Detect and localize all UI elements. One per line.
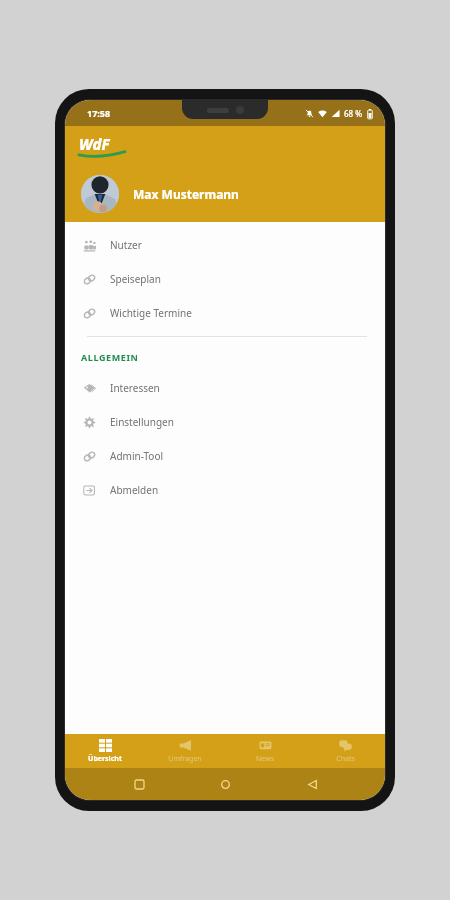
- button[interactable]: Interessen: [65, 371, 385, 405]
- staticText: Speiseplan: [110, 272, 161, 286]
- staticText: 17:58: [87, 107, 111, 119]
- button[interactable]: Übersicht: [65, 734, 145, 768]
- button[interactable]: Wichtige Termine: [65, 296, 385, 330]
- button[interactable]: Chats: [305, 734, 385, 768]
- staticText: WdF: [79, 134, 110, 154]
- staticText: News: [256, 754, 274, 764]
- button[interactable]: Recent apps: [126, 771, 152, 797]
- staticText: Einstellungen: [110, 415, 174, 429]
- button[interactable]: Abmelden: [65, 473, 385, 507]
- staticText: Nutzer: [110, 238, 142, 252]
- button[interactable]: Nutzer: [65, 228, 385, 262]
- button[interactable]: Max Mustermann: [65, 166, 385, 222]
- staticText: Chats: [336, 754, 355, 764]
- button[interactable]: Home: [212, 771, 238, 797]
- staticText: Abmelden: [110, 483, 159, 497]
- button[interactable]: Admin-Tool: [65, 439, 385, 473]
- button[interactable]: Umfragen: [145, 734, 225, 768]
- staticText: Max Mustermann: [133, 186, 239, 202]
- button[interactable]: Einstellungen: [65, 405, 385, 439]
- button[interactable]: Back: [299, 771, 325, 797]
- button[interactable]: News: [225, 734, 305, 768]
- staticText: Admin-Tool: [110, 449, 164, 463]
- staticText: Umfragen: [168, 754, 202, 764]
- staticText: Wichtige Termine: [110, 306, 192, 320]
- staticText: Interessen: [110, 381, 160, 395]
- staticText: 68 %: [344, 108, 363, 119]
- staticText: Übersicht: [88, 754, 122, 764]
- staticText: ALLGEMEIN: [81, 351, 139, 363]
- button[interactable]: Speiseplan: [65, 262, 385, 296]
